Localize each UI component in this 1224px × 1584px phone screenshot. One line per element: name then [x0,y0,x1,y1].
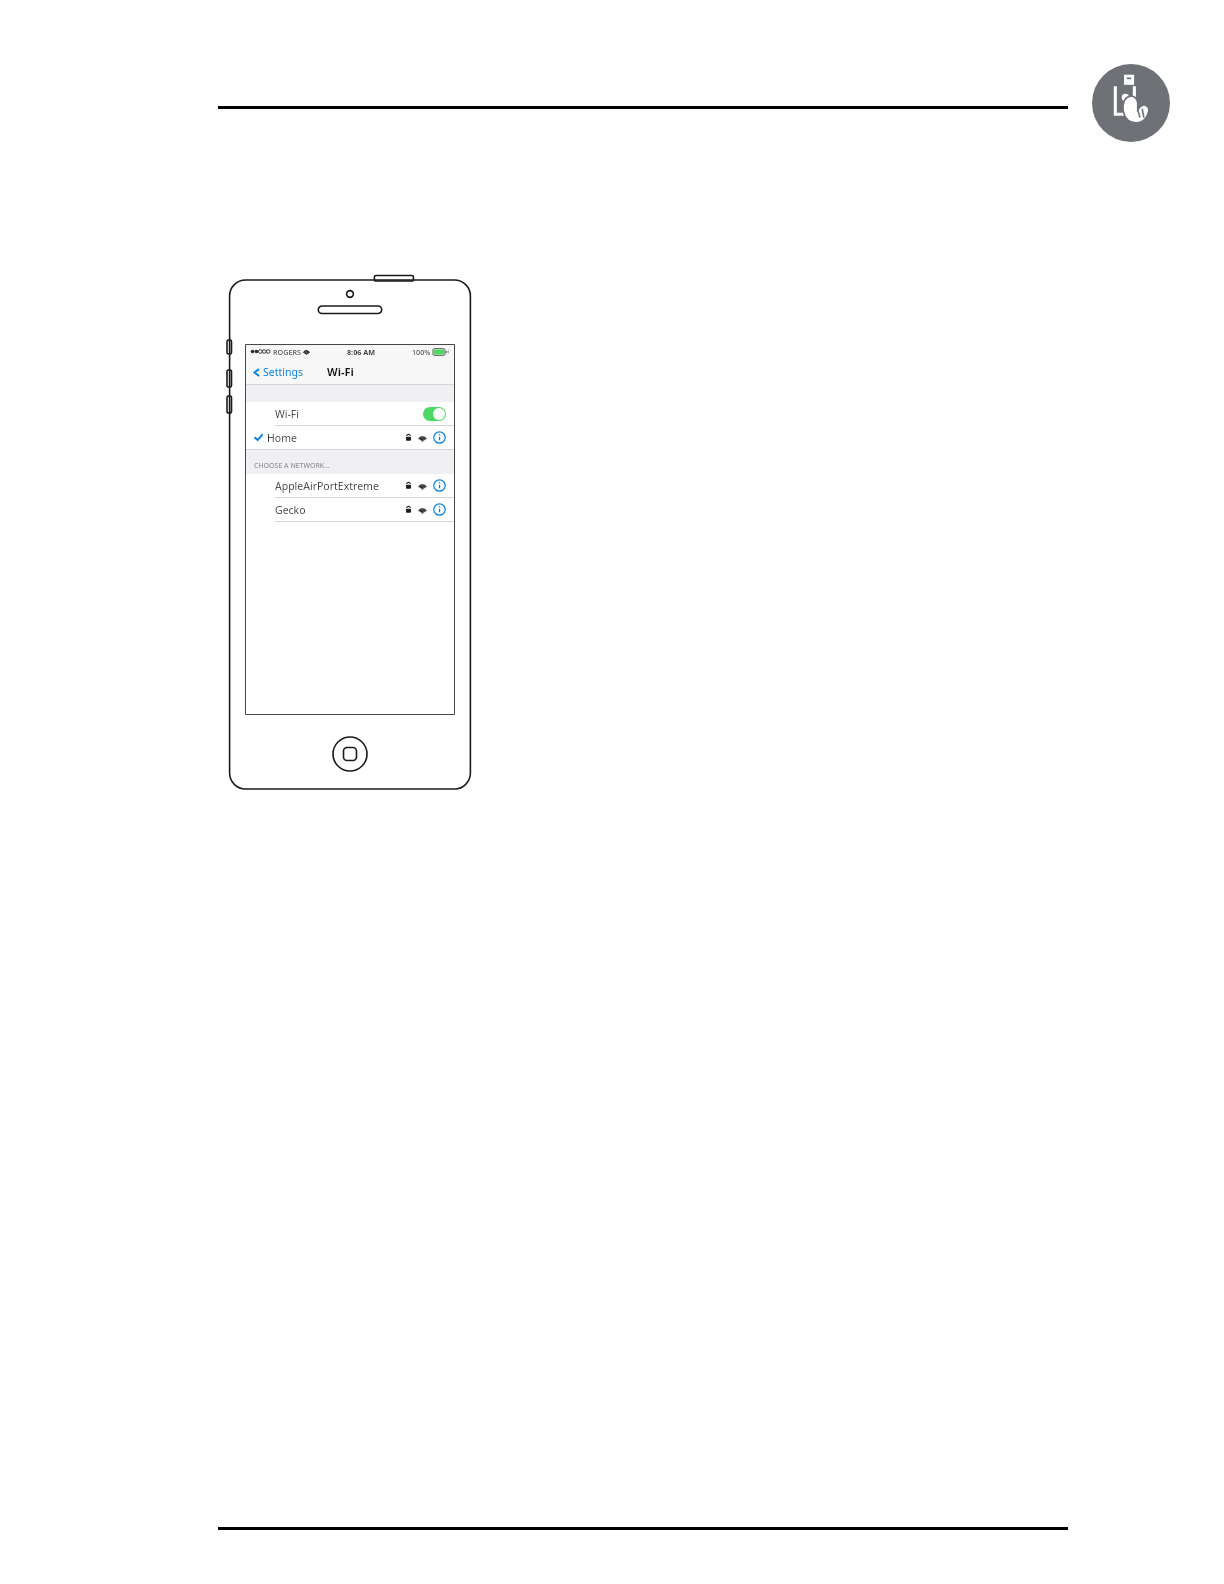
button[interactable]: More info [433,479,446,492]
staticText: Wi-Fi [327,364,354,379]
button[interactable]: Wi-Fi on [423,407,446,421]
button[interactable]: AppleAirPortExtreme [246,474,454,497]
button[interactable]: Settings [250,362,305,382]
button[interactable]: Home [246,426,454,449]
staticText: Settings [263,365,303,379]
button[interactable]: Gecko [246,498,454,521]
staticText: CHOOSE A NETWORK... [254,461,330,471]
button[interactable]: Step 2 tap indicator [1092,64,1170,142]
staticText: Gecko [275,503,306,517]
staticText: Wi-Fi [275,407,300,421]
button[interactable]: More info [433,431,446,444]
staticText: Home [267,431,297,445]
staticText: ROGERS [273,347,301,357]
staticText: 8:06 AM [347,347,375,357]
button[interactable]: More info [433,503,446,516]
staticText: 100% [412,347,431,357]
staticText: AppleAirPortExtreme [275,479,379,493]
button[interactable]: Wi-Fi [246,402,454,425]
